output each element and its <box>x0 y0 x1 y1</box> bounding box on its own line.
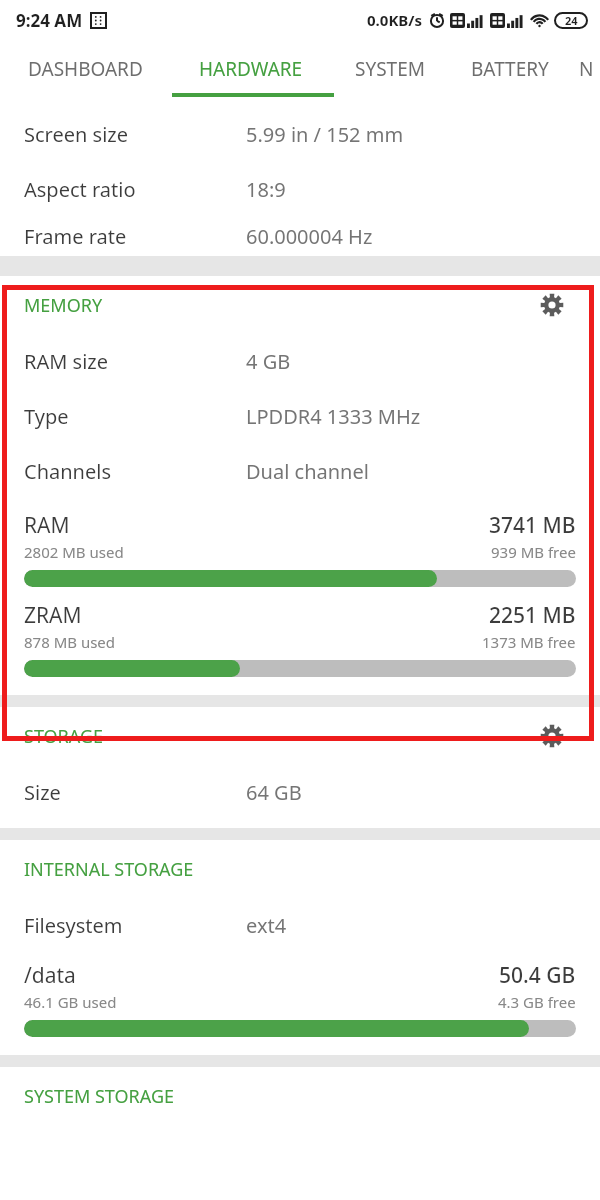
staticText: 878 MB used <box>24 632 116 652</box>
button[interactable]: /data <box>0 961 600 1037</box>
staticText: 2802 MB used <box>24 542 124 562</box>
staticText: 1373 MB free <box>482 632 576 652</box>
staticText: RAM size <box>24 348 108 375</box>
staticText: 24 <box>565 13 578 28</box>
button[interactable]: Frame rate <box>0 217 600 256</box>
button[interactable]: Filesystem <box>0 898 600 953</box>
button[interactable]: Size <box>0 765 600 820</box>
staticText: RAM <box>24 511 70 540</box>
button[interactable]: Aspect ratio <box>0 162 600 217</box>
staticText: DASHBOARD <box>28 56 143 82</box>
button[interactable]: N <box>572 40 600 97</box>
staticText: BATTERY <box>471 56 549 82</box>
staticText: HARDWARE <box>199 56 303 82</box>
staticText: 3741 MB <box>489 511 576 540</box>
staticText: 50.4 GB <box>499 961 576 990</box>
staticText: Aspect ratio <box>24 176 136 203</box>
staticText: 5.99 in / 152 mm <box>246 121 404 148</box>
staticText: MEMORY <box>24 293 103 318</box>
staticText: Type <box>24 403 69 430</box>
button[interactable]: Memory settings <box>532 285 572 325</box>
staticText: 939 MB free <box>491 542 576 562</box>
staticText: 2251 MB <box>489 601 576 630</box>
staticText: 4 GB <box>246 348 291 375</box>
button[interactable]: Storage settings <box>532 716 572 756</box>
staticText: LPDDR4 1333 MHz <box>246 403 421 430</box>
staticText: SYSTEM <box>355 56 425 82</box>
staticText: 64 GB <box>246 779 302 806</box>
staticText: 46.1 GB used <box>24 992 117 1012</box>
button[interactable]: BATTERY <box>447 40 572 97</box>
staticText: Size <box>24 779 61 806</box>
staticText: Screen size <box>24 121 128 148</box>
staticText: Frame rate <box>24 223 127 250</box>
button[interactable]: RAM size <box>0 334 600 389</box>
staticText: ZRAM <box>24 601 82 630</box>
button[interactable]: ZRAM <box>0 601 600 677</box>
button[interactable]: Screen size <box>0 107 600 162</box>
staticText: 60.000004 Hz <box>246 223 373 250</box>
staticText: Dual channel <box>246 458 369 485</box>
staticText: N <box>579 56 594 82</box>
button[interactable]: Type <box>0 389 600 444</box>
staticText: 18:9 <box>246 176 286 203</box>
staticText: Filesystem <box>24 912 123 939</box>
button[interactable]: Channels <box>0 444 600 499</box>
button[interactable]: SYSTEM <box>332 40 447 97</box>
button[interactable]: RAM <box>0 511 600 587</box>
staticText: SYSTEM STORAGE <box>24 1084 175 1109</box>
staticText: INTERNAL STORAGE <box>24 857 194 882</box>
staticText: ext4 <box>246 912 287 939</box>
staticText: 0.0KB/s <box>367 10 423 30</box>
staticText: 4.3 GB free <box>498 992 576 1012</box>
staticText: /data <box>24 961 76 990</box>
staticText: 9:24 AM <box>16 9 83 32</box>
staticText: STORAGE <box>24 724 104 749</box>
button[interactable]: DASHBOARD <box>0 40 170 97</box>
button[interactable]: HARDWARE <box>170 40 332 97</box>
staticText: Channels <box>24 458 111 485</box>
